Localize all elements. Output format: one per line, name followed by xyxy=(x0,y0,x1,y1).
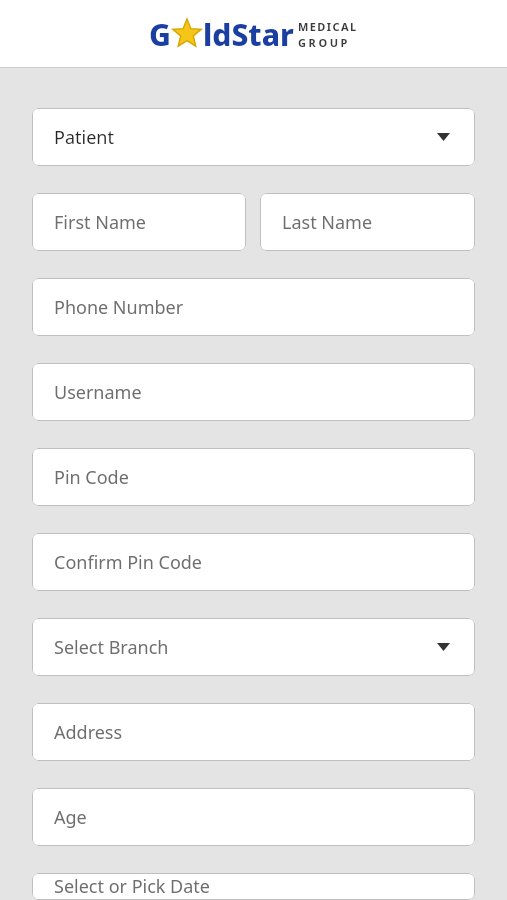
button[interactable]: Phone Number xyxy=(32,278,475,336)
button[interactable]: Age xyxy=(32,788,475,846)
button[interactable]: Select Branch xyxy=(32,618,475,676)
staticText: Age xyxy=(54,805,87,830)
staticText: GROUP xyxy=(298,35,351,50)
staticText: Pin Code xyxy=(54,465,129,490)
button[interactable]: First Name xyxy=(32,193,246,251)
button[interactable]: Last Name xyxy=(260,193,475,251)
staticText: Select Branch xyxy=(54,635,169,660)
staticText: First Name xyxy=(54,210,146,235)
button[interactable]: Confirm Pin Code xyxy=(32,533,475,591)
staticText: Patient xyxy=(54,125,114,150)
staticText: Last Name xyxy=(282,210,373,235)
staticText: Address xyxy=(54,720,123,745)
staticText: Username xyxy=(54,380,142,405)
button[interactable]: Select or Pick Date xyxy=(32,873,475,900)
staticText: G xyxy=(149,14,171,55)
staticText: ldStar xyxy=(203,14,294,55)
button[interactable]: Patient xyxy=(32,108,475,166)
button[interactable]: Username xyxy=(32,363,475,421)
other: Open dropdown xyxy=(433,637,453,657)
staticText: Select or Pick Date xyxy=(54,874,211,899)
staticText: Confirm Pin Code xyxy=(54,550,202,575)
other: Open dropdown xyxy=(433,127,453,147)
staticText: Phone Number xyxy=(54,295,184,320)
other: GoldStar Medical Group xyxy=(149,14,358,55)
staticText: MEDICAL xyxy=(298,19,358,34)
button[interactable]: Pin Code xyxy=(32,448,475,506)
button[interactable]: Address xyxy=(32,703,475,761)
